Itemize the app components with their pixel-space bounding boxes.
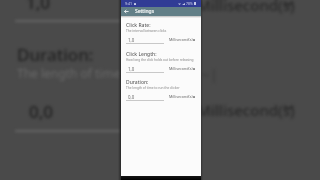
staticText: Duration: — [17, 43, 94, 66]
button[interactable]: 0,0 — [126, 94, 164, 101]
button[interactable]: Back — [121, 7, 131, 16]
staticText: Millisecond(s) — [169, 94, 193, 99]
button[interactable]: 1,0 — [126, 66, 164, 73]
staticText: 0,0 — [29, 100, 54, 123]
staticText: The length of time — [17, 65, 121, 81]
staticText: How long the click holds out before rele… — [126, 58, 194, 62]
staticText: Click Length: — [126, 51, 157, 58]
staticText: 9:41 — [125, 1, 133, 6]
staticText: Click Rate: — [126, 22, 151, 29]
staticText: The interval between clicks — [126, 29, 167, 33]
staticText: Millisecond(s) — [197, 0, 295, 15]
staticText: 1,0 — [26, 0, 51, 14]
staticText: 0,0 — [128, 94, 135, 100]
staticText: Duration: — [126, 79, 149, 86]
button[interactable]: Millisecond(s) — [169, 66, 194, 71]
staticText: Millisecond(s) — [169, 66, 193, 71]
staticText: Settings — [135, 8, 155, 15]
staticText: Millisecond(s) — [197, 100, 295, 120]
staticText: 78% — [186, 1, 193, 6]
button[interactable]: Millisecond(s) — [169, 94, 194, 99]
button[interactable]: 1,0 — [126, 37, 164, 44]
staticText: ~| — [201, 64, 218, 84]
staticText: The length of time to run the clicker — [126, 86, 180, 90]
staticText: 1,0 — [128, 37, 135, 43]
staticText: 1,0 — [128, 66, 135, 72]
button[interactable]: Millisecond(s) — [169, 37, 194, 42]
staticText: Millisecond(s) — [169, 37, 193, 42]
